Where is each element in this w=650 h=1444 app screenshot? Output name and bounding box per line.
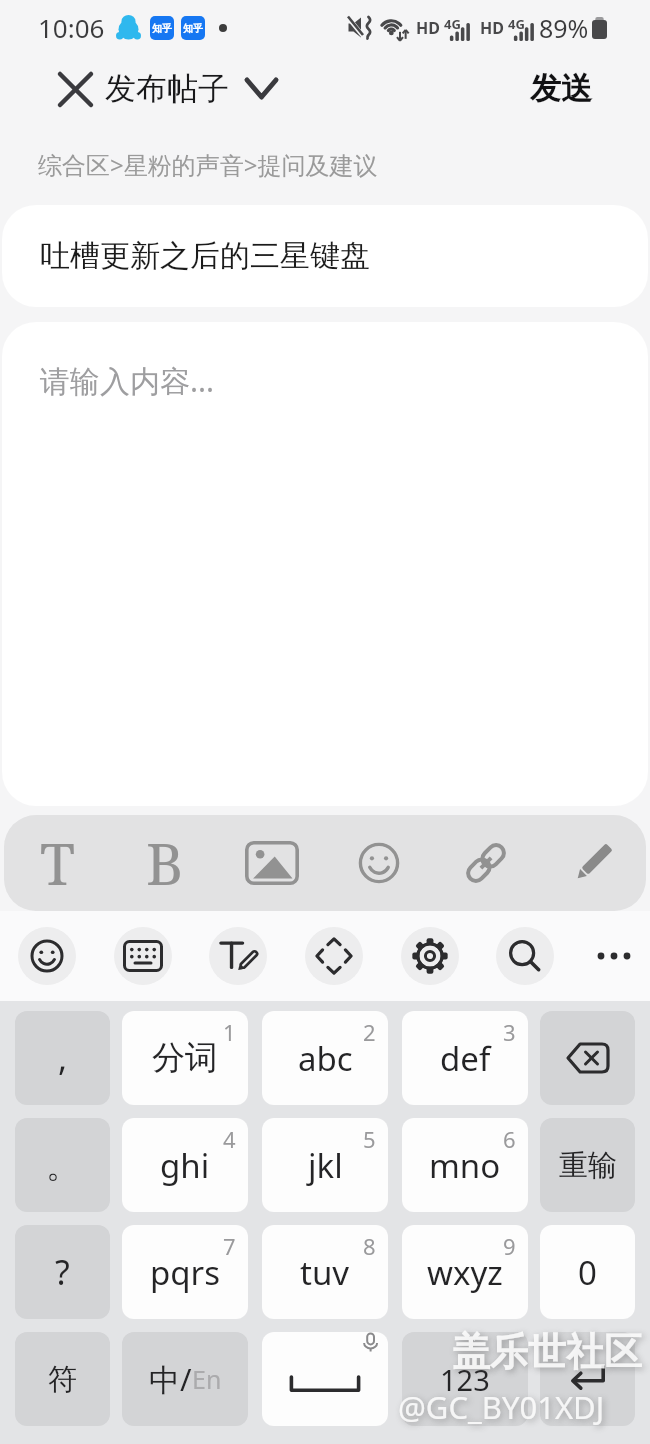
button[interactable]: , (15, 1011, 110, 1105)
staticText: 吐槽更新之后的三星键盘 (40, 237, 370, 275)
button[interactable]: 请输入内容... (2, 322, 648, 806)
staticText: 89% (539, 11, 589, 45)
button[interactable] (496, 927, 554, 985)
staticText: 知乎 (183, 22, 203, 35)
button[interactable]: wxyz (402, 1225, 528, 1319)
button[interactable] (114, 927, 172, 985)
button[interactable] (305, 927, 363, 985)
button[interactable]: tuv (262, 1225, 388, 1319)
button[interactable]: 发送 (530, 69, 592, 108)
staticText: 4 (223, 1124, 236, 1154)
staticText: ? (55, 1249, 70, 1295)
button[interactable]: mno (402, 1118, 528, 1212)
staticText: 综合区>星粉的声音>提问及建议 (38, 148, 378, 181)
staticText: ghi (160, 1143, 210, 1188)
button[interactable] (592, 934, 636, 978)
button[interactable]: T (4, 815, 111, 911)
button[interactable] (401, 927, 459, 985)
button[interactable]: jkl (262, 1118, 388, 1212)
button[interactable]: 0 (540, 1225, 635, 1319)
button[interactable]: abc (262, 1011, 388, 1105)
staticText: HD (416, 17, 440, 39)
button[interactable]: pqrs (122, 1225, 248, 1319)
button[interactable] (540, 1332, 635, 1426)
button[interactable] (56, 70, 94, 108)
button[interactable] (432, 815, 539, 911)
staticText: , (58, 1035, 68, 1081)
button[interactable]: 中/ (122, 1332, 248, 1426)
staticText: @GC_BY01XDJ (398, 1386, 605, 1428)
staticText: 7 (223, 1231, 236, 1261)
staticText: 。 (46, 1144, 80, 1187)
button[interactable]: 123 (402, 1332, 528, 1426)
staticText: 请输入内容... (40, 360, 215, 401)
staticText: 3 (503, 1017, 516, 1047)
staticText: 6 (503, 1124, 516, 1154)
staticText: 8 (363, 1231, 376, 1261)
button[interactable] (209, 927, 267, 985)
button[interactable]: ghi (122, 1118, 248, 1212)
button[interactable] (218, 815, 325, 911)
button[interactable]: B (111, 815, 218, 911)
staticText: 5 (363, 1124, 376, 1154)
button[interactable]: 符 (15, 1332, 110, 1426)
staticText: jkl (308, 1143, 343, 1188)
button[interactable]: 发布帖子 (105, 69, 276, 108)
button[interactable] (18, 927, 76, 985)
staticText: T (40, 824, 75, 902)
staticText: HD (480, 17, 504, 39)
button[interactable]: 吐槽更新之后的三星键盘 (2, 205, 648, 307)
button[interactable]: def (402, 1011, 528, 1105)
button[interactable]: 分词 (122, 1011, 248, 1105)
button[interactable] (540, 1011, 635, 1105)
staticText: 发送 (530, 69, 592, 108)
staticText: pqrs (150, 1250, 221, 1295)
button[interactable] (262, 1332, 388, 1426)
button[interactable]: 。 (15, 1118, 110, 1212)
staticText: wxyz (427, 1250, 503, 1295)
staticText: tuv (300, 1250, 350, 1295)
button[interactable]: 重输 (540, 1118, 635, 1212)
staticText: mno (429, 1143, 501, 1188)
staticText: abc (298, 1036, 353, 1081)
staticText: 2 (363, 1017, 376, 1047)
staticText: 1 (223, 1017, 236, 1047)
staticText: En (192, 1362, 222, 1396)
staticText: 4G (444, 15, 461, 33)
staticText: def (440, 1036, 491, 1081)
staticText: 123 (440, 1360, 490, 1399)
button[interactable]: ? (15, 1225, 110, 1319)
staticText: 盖乐世社区 (452, 1328, 642, 1376)
staticText: 9 (503, 1231, 516, 1261)
staticText: B (146, 824, 184, 902)
staticText: 发布帖子 (105, 69, 229, 108)
button[interactable] (325, 815, 432, 911)
staticText: 分词 (152, 1037, 218, 1079)
staticText: 0 (578, 1250, 597, 1295)
staticText: 中/ (149, 1358, 192, 1400)
staticText: 符 (48, 1361, 77, 1398)
staticText: 重输 (559, 1147, 617, 1184)
button[interactable] (539, 815, 646, 911)
staticText: 知乎 (152, 22, 172, 35)
staticText: 10:06 (38, 10, 105, 45)
staticText: 4G (508, 15, 525, 33)
